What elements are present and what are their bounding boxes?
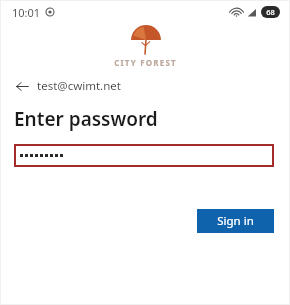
staticText: 68 [266,7,275,17]
button[interactable]: Back [14,78,30,94]
staticText: CITY FOREST [114,57,177,68]
button[interactable]: Sign in [197,209,274,233]
staticText: Sign in [217,213,254,229]
button[interactable] [14,144,274,167]
staticText: 10:01 [12,5,41,20]
staticText: test@cwimt.net [37,78,121,94]
staticText: Enter password [14,106,158,132]
